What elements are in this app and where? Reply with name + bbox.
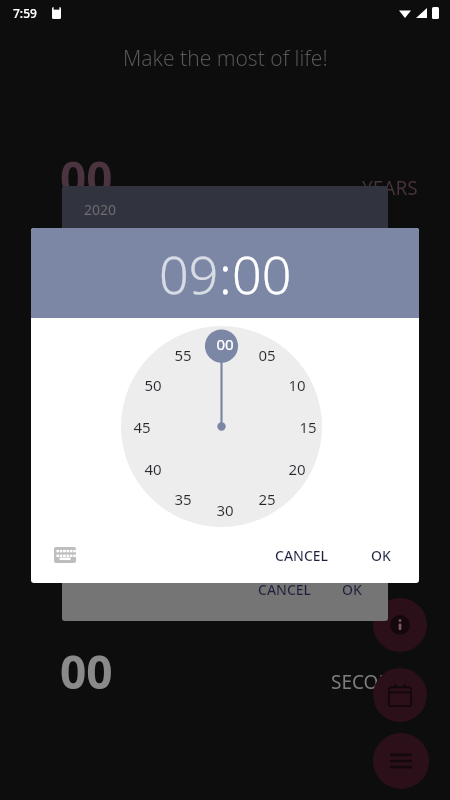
staticText: OK (371, 546, 391, 565)
staticText: 45 (133, 417, 151, 437)
staticText: 2020 (84, 200, 117, 219)
button[interactable]: Calendar (373, 668, 427, 722)
staticText: Make the most of life! (123, 44, 328, 73)
staticText: : (219, 238, 232, 309)
staticText: 50 (144, 375, 162, 395)
staticText: 25 (258, 489, 276, 509)
button[interactable]: CANCEL (271, 542, 333, 569)
button[interactable]: OK (342, 580, 362, 599)
button[interactable]: 00 (121, 326, 329, 527)
staticText: 20 (288, 459, 306, 479)
staticText: 35 (174, 489, 192, 509)
button[interactable]: 00 (232, 238, 292, 309)
staticText: 00 (60, 640, 113, 703)
staticText: 00 (60, 146, 113, 209)
staticText: 05 (258, 345, 276, 365)
staticText: 00 (216, 334, 234, 354)
button[interactable]: Info (373, 598, 427, 652)
button[interactable]: Menu (373, 733, 429, 789)
staticText: YEARS (362, 175, 418, 201)
staticText: 55 (174, 345, 192, 365)
staticText: SECONDS (331, 669, 418, 695)
staticText: 7:59 (13, 5, 37, 21)
button[interactable]: Switch to keyboard input (49, 539, 81, 571)
staticText: 40 (144, 459, 162, 479)
button[interactable]: 09 (159, 238, 219, 309)
staticText: CANCEL (275, 546, 329, 565)
button[interactable]: CANCEL (258, 580, 312, 599)
button[interactable]: OK (367, 542, 395, 569)
staticText: 15 (299, 417, 317, 437)
staticText: 30 (216, 500, 234, 520)
staticText: 10 (288, 375, 306, 395)
